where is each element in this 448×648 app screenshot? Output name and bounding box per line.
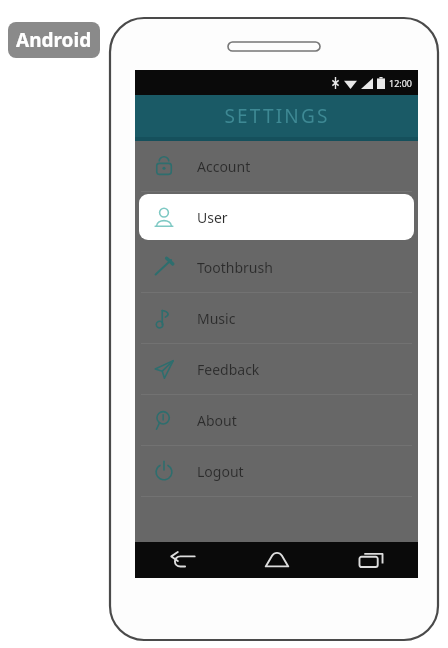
button[interactable]: Logout — [135, 446, 418, 496]
button[interactable]: Android — [8, 22, 100, 58]
button[interactable]: Music — [135, 293, 418, 343]
button[interactable]: Toothbrush — [135, 242, 418, 292]
staticText: Feedback — [197, 360, 260, 379]
staticText: SETTINGS — [224, 103, 330, 129]
button[interactable]: Home — [230, 542, 324, 578]
staticText: Account — [197, 157, 251, 176]
button[interactable]: Feedback — [135, 344, 418, 394]
button[interactable]: Back — [135, 542, 230, 578]
button[interactable]: Account — [135, 141, 418, 191]
staticText: About — [197, 411, 237, 430]
staticText: Logout — [197, 462, 244, 481]
staticText: Android — [16, 27, 92, 53]
staticText: Music — [197, 309, 236, 328]
staticText: Toothbrush — [197, 258, 273, 277]
button[interactable]: User — [139, 194, 414, 240]
staticText: 12:00 — [389, 77, 413, 89]
button[interactable]: About — [135, 395, 418, 445]
button[interactable]: Recent apps — [324, 542, 418, 578]
staticText: User — [197, 208, 228, 227]
